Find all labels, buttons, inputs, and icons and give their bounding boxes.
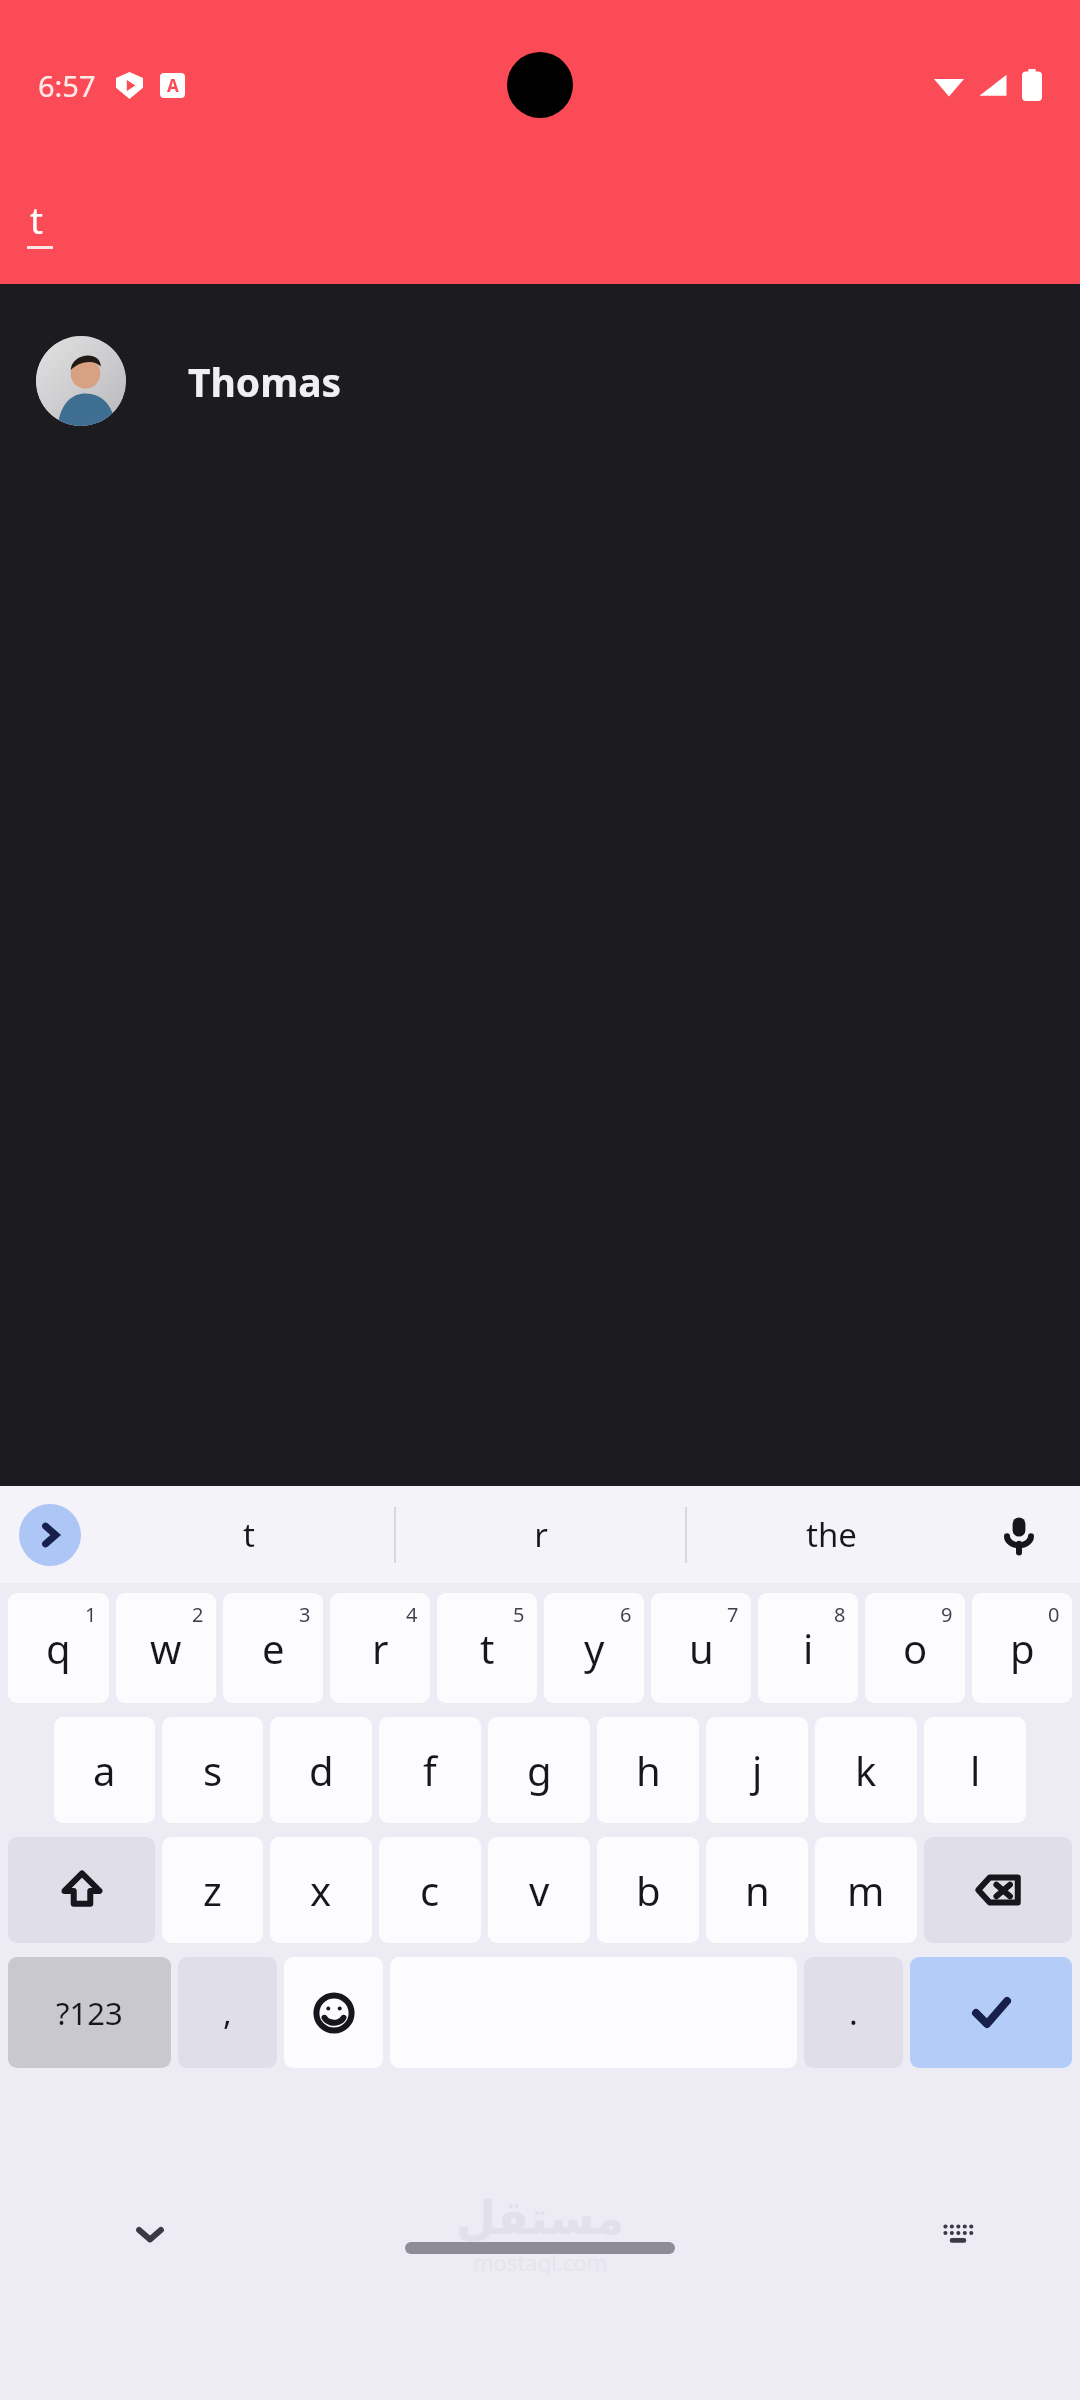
- button[interactable]: d: [270, 1717, 372, 1823]
- staticText: m: [847, 1863, 885, 1917]
- button[interactable]: Emoji: [284, 1957, 383, 2068]
- staticText: k: [855, 1743, 877, 1797]
- button[interactable]: Change input method: [926, 2202, 990, 2266]
- button[interactable]: x: [270, 1837, 372, 1943]
- button[interactable]: z: [162, 1837, 263, 1943]
- staticText: مستقل: [456, 2191, 625, 2245]
- staticText: c: [420, 1863, 440, 1917]
- button[interactable]: Voice input: [984, 1500, 1054, 1570]
- staticText: t: [243, 1512, 255, 1557]
- staticText: 6:57: [38, 66, 96, 105]
- staticText: e: [262, 1621, 285, 1675]
- staticText: t: [480, 1621, 495, 1675]
- staticText: r: [534, 1512, 548, 1557]
- staticText: 5: [513, 1601, 525, 1628]
- staticText: l: [970, 1743, 981, 1797]
- staticText: y: [584, 1621, 605, 1675]
- staticText: t: [30, 196, 43, 245]
- button[interactable]: .: [804, 1957, 903, 2068]
- staticText: z: [203, 1863, 222, 1917]
- button[interactable]: u: [651, 1593, 751, 1703]
- button[interactable]: j: [706, 1717, 808, 1823]
- staticText: 2: [192, 1601, 204, 1628]
- button[interactable]: s: [162, 1717, 263, 1823]
- staticText: v: [529, 1863, 550, 1917]
- staticText: p: [1010, 1621, 1035, 1675]
- button[interactable]: t: [22, 196, 82, 266]
- button[interactable]: m: [815, 1837, 917, 1943]
- button[interactable]: h: [597, 1717, 699, 1823]
- button[interactable]: y: [544, 1593, 644, 1703]
- staticText: x: [310, 1863, 332, 1917]
- staticText: w: [150, 1621, 182, 1675]
- button[interactable]: c: [379, 1837, 481, 1943]
- button[interactable]: Backspace: [924, 1837, 1072, 1943]
- button[interactable]: w: [116, 1593, 216, 1703]
- staticText: b: [636, 1863, 661, 1917]
- button[interactable]: Thomas: [36, 336, 342, 426]
- button[interactable]: Enter: [910, 1957, 1072, 2068]
- button[interactable]: ?123: [8, 1957, 171, 2068]
- staticText: ?123: [56, 1992, 123, 2034]
- staticText: f: [423, 1743, 437, 1797]
- button[interactable]: r: [330, 1593, 430, 1703]
- button[interactable]: ,: [178, 1957, 277, 2068]
- button[interactable]: k: [815, 1717, 917, 1823]
- button[interactable]: r: [396, 1486, 685, 1583]
- staticText: 1: [85, 1601, 97, 1628]
- staticText: 3: [299, 1601, 311, 1628]
- staticText: a: [93, 1743, 116, 1797]
- button[interactable]: t: [104, 1486, 394, 1583]
- button[interactable]: i: [758, 1593, 858, 1703]
- staticText: s: [203, 1743, 223, 1797]
- staticText: h: [636, 1743, 661, 1797]
- staticText: the: [806, 1512, 857, 1557]
- button[interactable]: l: [924, 1717, 1026, 1823]
- staticText: .: [849, 1990, 858, 2035]
- staticText: u: [689, 1621, 714, 1675]
- button[interactable]: Shift: [8, 1837, 155, 1943]
- staticText: 0: [1048, 1601, 1060, 1628]
- staticText: 6: [620, 1601, 632, 1628]
- button[interactable]: g: [488, 1717, 590, 1823]
- button[interactable]: q: [8, 1593, 109, 1703]
- button[interactable]: o: [865, 1593, 965, 1703]
- staticText: o: [903, 1621, 928, 1675]
- button[interactable]: the: [687, 1486, 976, 1583]
- staticText: mostaql.com: [473, 2247, 608, 2277]
- staticText: 7: [727, 1601, 739, 1628]
- button[interactable]: e: [223, 1593, 323, 1703]
- button[interactable]: t: [437, 1593, 537, 1703]
- button[interactable]: b: [597, 1837, 699, 1943]
- staticText: i: [803, 1621, 814, 1675]
- staticText: r: [372, 1621, 389, 1675]
- staticText: n: [745, 1863, 770, 1917]
- staticText: j: [752, 1743, 763, 1797]
- staticText: 4: [406, 1601, 418, 1628]
- staticText: ,: [223, 1990, 232, 2035]
- staticText: A: [167, 74, 179, 97]
- button[interactable]: a: [54, 1717, 155, 1823]
- staticText: g: [527, 1743, 552, 1797]
- staticText: 8: [834, 1601, 846, 1628]
- button[interactable]: Expand suggestions: [19, 1504, 81, 1566]
- staticText: d: [309, 1743, 334, 1797]
- button[interactable]: n: [706, 1837, 808, 1943]
- button[interactable]: p: [972, 1593, 1072, 1703]
- staticText: q: [46, 1621, 71, 1675]
- staticText: Thomas: [188, 355, 342, 408]
- button[interactable]: f: [379, 1717, 481, 1823]
- button[interactable]: Hide keyboard: [118, 2202, 182, 2266]
- staticText: 9: [941, 1601, 953, 1628]
- button[interactable]: v: [488, 1837, 590, 1943]
